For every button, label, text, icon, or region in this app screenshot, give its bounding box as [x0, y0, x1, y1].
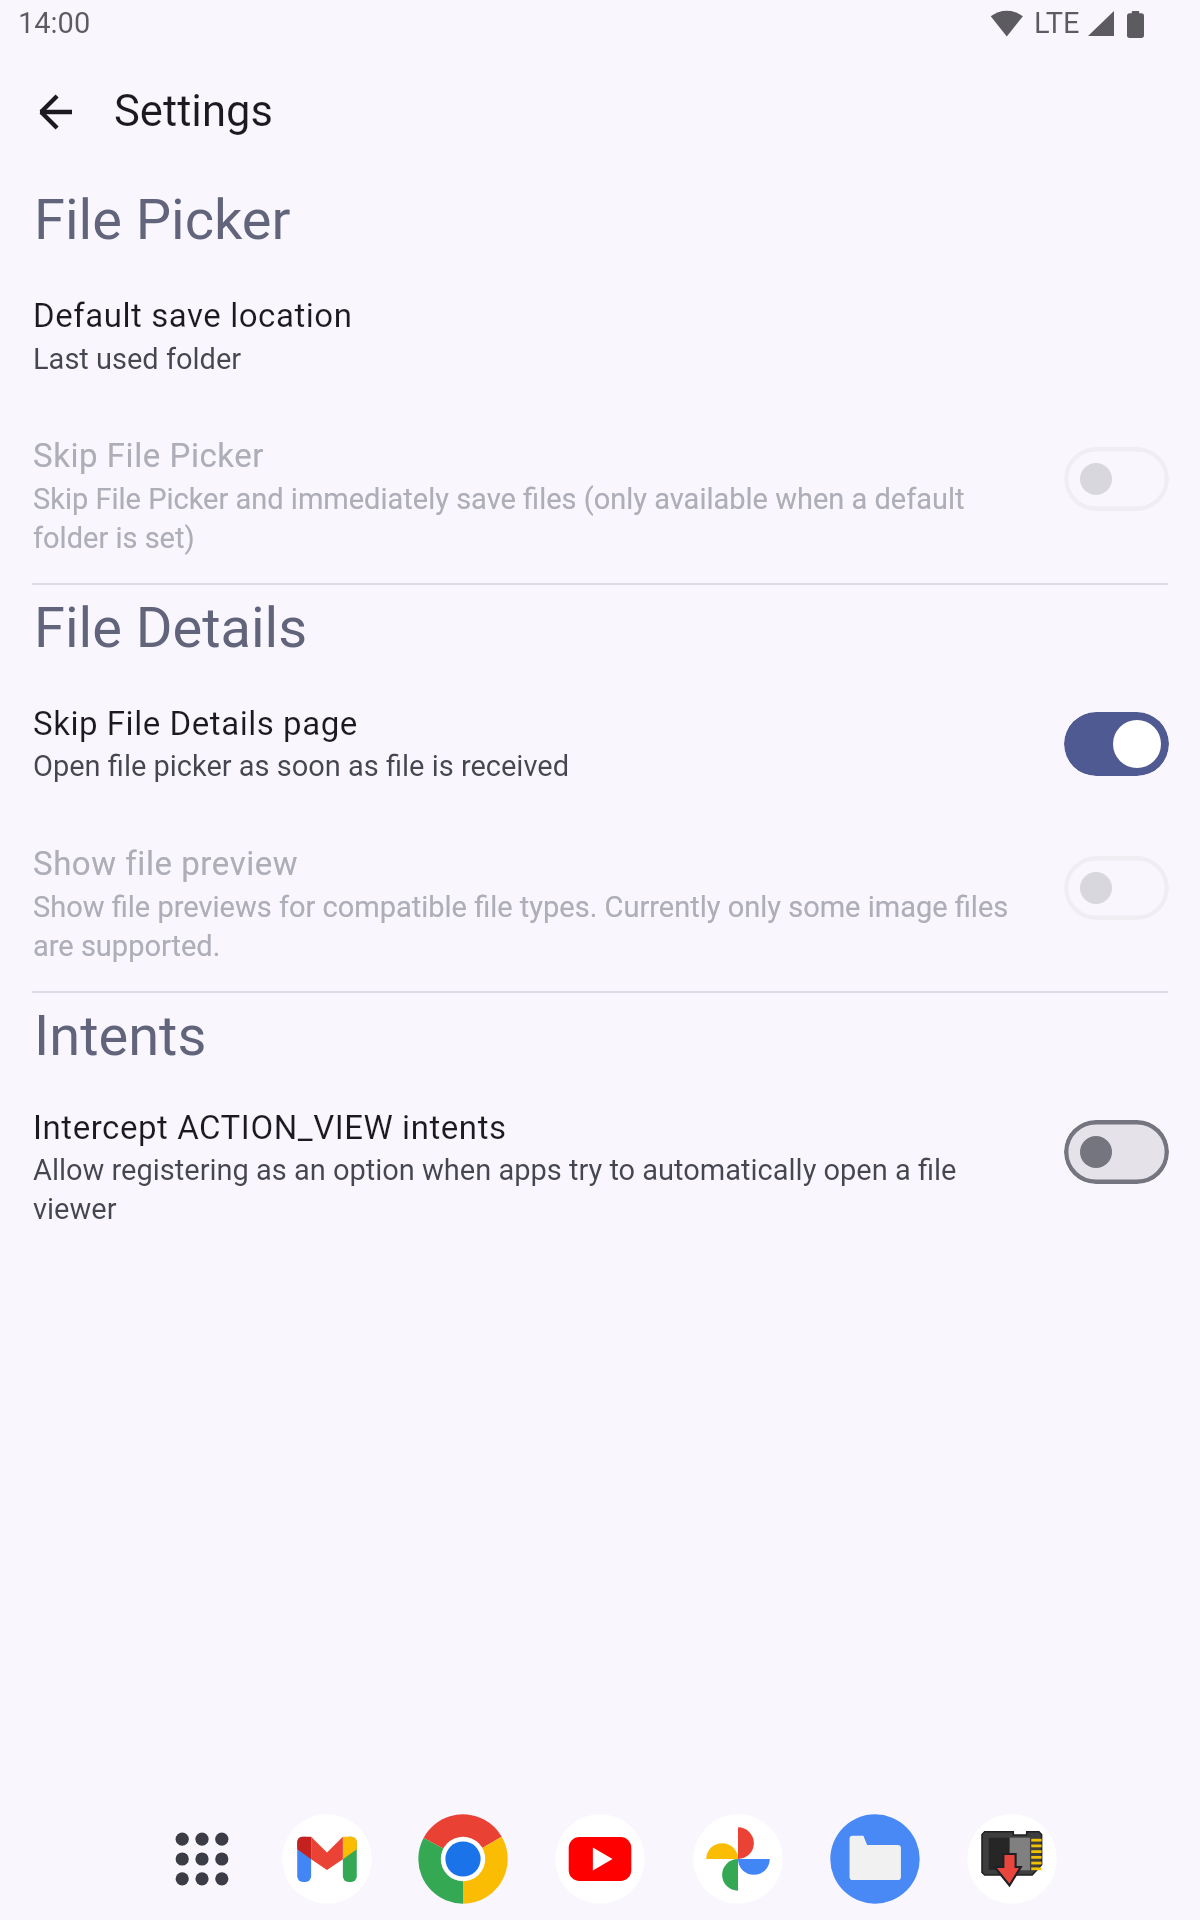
staticText: 14:00 — [18, 6, 91, 40]
button[interactable]: SD Card — [960, 1807, 1064, 1911]
staticText: Open file picker as soon as file is rece… — [33, 749, 1018, 783]
button[interactable]: Toggle — [1064, 712, 1169, 776]
button[interactable]: Photos — [686, 1807, 790, 1911]
button[interactable]: Toggle — [1064, 856, 1169, 920]
staticText: Last used folder — [33, 342, 1018, 376]
button[interactable]: Chrome — [411, 1807, 515, 1911]
staticText: File Picker — [34, 187, 291, 253]
button[interactable] — [0, 270, 1200, 400]
staticText: Skip File Details page — [33, 704, 1033, 743]
staticText: Show file previews for compatible file t… — [33, 890, 1018, 963]
button[interactable]: Back — [16, 72, 96, 152]
staticText: File Details — [34, 595, 308, 661]
button[interactable]: All apps — [150, 1807, 254, 1911]
staticText: Skip File Picker and immediately save fi… — [33, 482, 1018, 555]
button[interactable] — [0, 682, 1200, 800]
staticText: Settings — [114, 86, 273, 137]
button[interactable] — [0, 820, 1200, 980]
staticText: Skip File Picker — [33, 436, 1033, 475]
button[interactable]: YouTube — [548, 1807, 652, 1911]
button[interactable]: Toggle — [1064, 1120, 1169, 1184]
staticText: Show file preview — [33, 844, 1033, 883]
staticText: LTE — [1034, 6, 1080, 40]
button[interactable] — [0, 412, 1200, 572]
button[interactable]: Gmail — [275, 1807, 379, 1911]
staticText: Allow registering as an option when apps… — [33, 1153, 1018, 1226]
button[interactable]: Toggle — [1064, 447, 1169, 511]
button[interactable] — [0, 1086, 1200, 1245]
button[interactable]: Files — [823, 1807, 927, 1911]
staticText: Intents — [34, 1003, 207, 1069]
staticText: Default save location — [33, 296, 1033, 335]
staticText: Intercept ACTION_VIEW intents — [33, 1108, 1033, 1147]
